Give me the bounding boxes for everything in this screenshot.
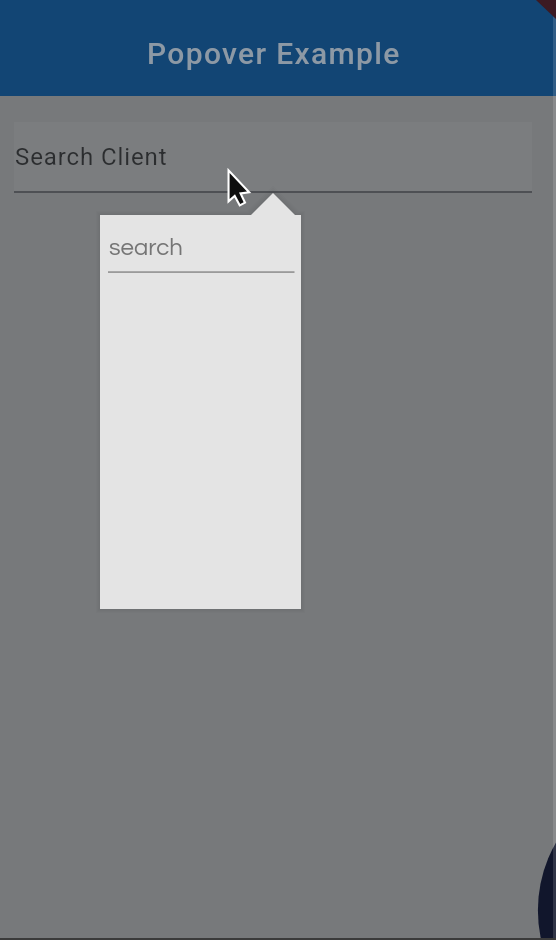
staticText: Search Client xyxy=(15,143,168,171)
button[interactable]: Popover Example xyxy=(0,0,556,96)
staticText: search xyxy=(109,235,183,260)
button[interactable] xyxy=(100,215,301,273)
button[interactable]: Add client xyxy=(0,0,556,940)
button[interactable]: Search Client xyxy=(14,122,532,193)
staticText: Popover Example xyxy=(147,36,401,71)
